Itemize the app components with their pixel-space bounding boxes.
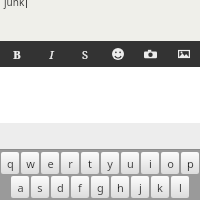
- button[interactable]: f: [71, 176, 89, 198]
- staticText: i: [149, 156, 152, 171]
- button[interactable]: Insert image: [167, 41, 200, 67]
- staticText: l: [179, 180, 182, 195]
- staticText: p: [187, 156, 194, 171]
- button[interactable]: junk: [0, 0, 200, 41]
- staticText: h: [117, 180, 124, 195]
- button[interactable]: l: [171, 176, 189, 198]
- button[interactable]: k: [151, 176, 169, 198]
- button[interactable]: r: [61, 152, 79, 174]
- staticText: junk: [4, 0, 25, 9]
- staticText: f: [78, 180, 82, 195]
- button[interactable]: u: [121, 152, 139, 174]
- button[interactable]: j: [131, 176, 149, 198]
- button[interactable]: t: [81, 152, 99, 174]
- button[interactable]: d: [51, 176, 69, 198]
- staticText: a: [17, 180, 24, 195]
- button[interactable]: Insert emoji: [101, 41, 134, 67]
- button[interactable]: e: [41, 152, 59, 174]
- staticText: y: [107, 156, 113, 171]
- staticText: S: [82, 47, 88, 62]
- staticText: q: [7, 156, 14, 171]
- staticText: r: [68, 156, 73, 171]
- staticText: t: [88, 156, 92, 171]
- staticText: e: [47, 156, 54, 171]
- button[interactable]: Strikethrough: [68, 41, 101, 67]
- button[interactable]: w: [21, 152, 39, 174]
- button[interactable]: q: [1, 152, 19, 174]
- staticText: s: [37, 180, 43, 195]
- button[interactable]: Take photo: [134, 41, 167, 67]
- staticText: o: [167, 156, 174, 171]
- staticText: u: [127, 156, 134, 171]
- button[interactable]: o: [161, 152, 179, 174]
- staticText: w: [26, 156, 35, 171]
- staticText: d: [57, 180, 64, 195]
- button[interactable]: h: [111, 176, 129, 198]
- button[interactable]: p: [181, 152, 199, 174]
- button[interactable]: Italic: [34, 41, 68, 67]
- button[interactable]: Bold: [0, 41, 34, 67]
- button[interactable]: i: [141, 152, 159, 174]
- button[interactable]: s: [31, 176, 49, 198]
- button[interactable]: y: [101, 152, 119, 174]
- staticText: j: [139, 180, 142, 195]
- button[interactable]: g: [91, 176, 109, 198]
- button[interactable]: a: [11, 176, 29, 198]
- staticText: I: [49, 47, 54, 62]
- staticText: k: [157, 180, 163, 195]
- staticText: B: [13, 47, 21, 62]
- staticText: g: [97, 180, 104, 195]
